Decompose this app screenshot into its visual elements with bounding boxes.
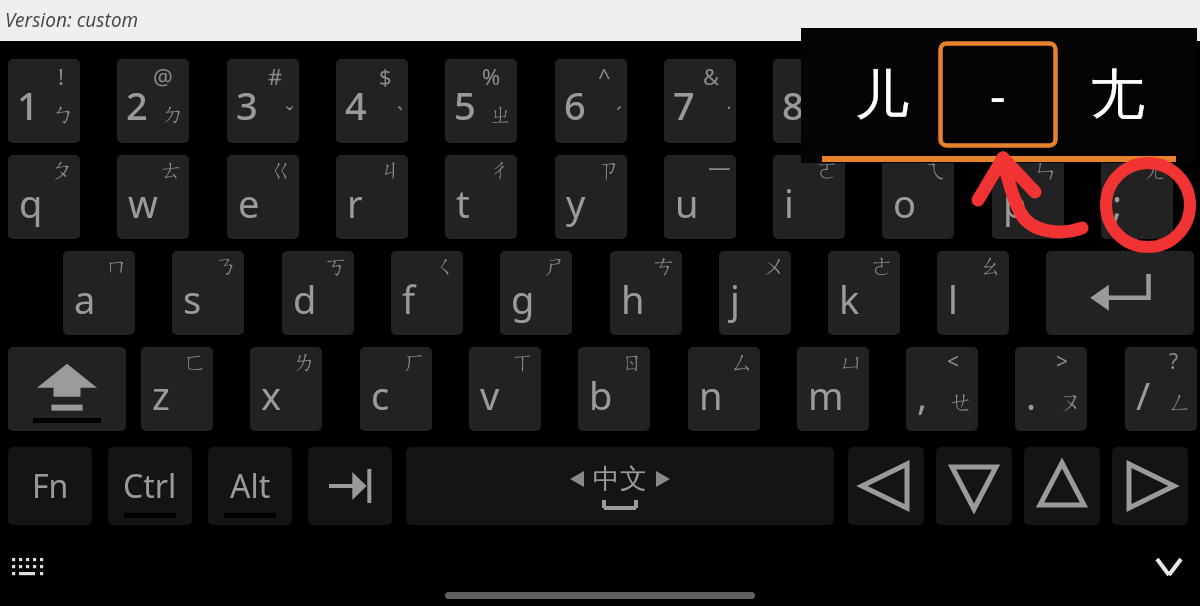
button[interactable]: Up (1024, 447, 1100, 525)
button[interactable]: 2 (117, 59, 189, 143)
button[interactable]: Left (848, 447, 924, 525)
staticText: g (511, 273, 535, 325)
button[interactable]: / (1125, 347, 1197, 431)
staticText: e (238, 177, 260, 229)
button[interactable]: u (664, 155, 736, 239)
button[interactable]: 7 (664, 59, 736, 143)
button[interactable]: w (117, 155, 189, 239)
staticText: 1 (17, 79, 39, 131)
staticText: ˊ (616, 99, 623, 129)
button[interactable]: j (719, 251, 791, 335)
button[interactable]: 儿 (827, 42, 937, 147)
button[interactable]: g (500, 251, 572, 335)
staticText: w (128, 177, 158, 229)
button[interactable]: 5 (445, 59, 517, 143)
staticText: ㄌ (293, 348, 317, 377)
button[interactable]: - (939, 42, 1057, 147)
button[interactable]: - (1101, 59, 1173, 143)
staticText: ! (58, 61, 64, 91)
button[interactable]: 0 (992, 59, 1064, 143)
button[interactable]: m (797, 347, 869, 431)
button[interactable]: . (1015, 347, 1087, 431)
button[interactable]: d (282, 251, 354, 335)
staticText: m (808, 369, 844, 421)
staticText: ㄅ (53, 101, 76, 129)
staticText: ㄏ (403, 348, 427, 377)
button[interactable]: ; (1101, 155, 1173, 239)
button[interactable]: Hide keyboard (1148, 552, 1190, 582)
button[interactable]: y (555, 155, 627, 239)
button[interactable]: 中文 (406, 447, 834, 525)
button[interactable]: Enter (1046, 251, 1194, 335)
button[interactable]: f (391, 251, 463, 335)
staticText: i (784, 177, 794, 229)
button[interactable]: x (250, 347, 322, 431)
button[interactable]: Right (1112, 447, 1188, 525)
button[interactable]: k (828, 251, 900, 335)
button[interactable]: p (992, 155, 1064, 239)
staticText: n (699, 369, 723, 421)
staticText: c (371, 369, 390, 421)
button[interactable]: 6 (555, 59, 627, 143)
staticText: ㄨ (762, 252, 786, 281)
staticText: < (947, 347, 960, 376)
staticText: 尢 (1091, 61, 1145, 129)
staticText: - (1110, 79, 1123, 131)
button[interactable]: e (227, 155, 299, 239)
staticText: ㄣ (1035, 156, 1059, 185)
staticText: u (675, 177, 699, 229)
staticText: ; (1112, 177, 1123, 229)
button[interactable]: o (882, 155, 954, 239)
button[interactable]: 1 (8, 59, 80, 143)
staticText: y (566, 177, 586, 229)
button[interactable]: 9 (882, 59, 954, 143)
button[interactable]: t (445, 155, 517, 239)
staticText: ㄋ (215, 252, 239, 281)
staticText: ㄊ (160, 156, 184, 185)
button[interactable]: s (172, 251, 244, 335)
button[interactable]: a (63, 251, 135, 335)
button[interactable]: Tab (308, 447, 392, 525)
staticText: ㄐ (379, 156, 403, 185)
staticText: 儿 (855, 61, 909, 129)
staticText: ㄉ (162, 101, 185, 129)
staticText: ㄆ (51, 156, 75, 185)
button[interactable]: Down (936, 447, 1012, 525)
button[interactable]: n (688, 347, 760, 431)
staticText: v (480, 369, 500, 421)
staticText: $ (379, 61, 392, 91)
button[interactable]: , (906, 347, 978, 431)
button[interactable]: v (469, 347, 541, 431)
button[interactable]: b (578, 347, 650, 431)
staticText: a (74, 273, 96, 325)
button[interactable]: Switch keyboard (10, 554, 44, 580)
staticText: / (1136, 369, 1151, 421)
staticText: ㄥ (1169, 388, 1193, 417)
staticText: b (589, 369, 613, 421)
button[interactable]: q (8, 155, 80, 239)
button[interactable]: 8 (773, 59, 845, 143)
staticText: Fn (32, 464, 69, 508)
button[interactable]: c (360, 347, 432, 431)
staticText: ㄎ (325, 252, 349, 281)
button[interactable]: h (610, 251, 682, 335)
button[interactable]: Ctrl (108, 447, 192, 525)
staticText: ㄒ (512, 348, 536, 377)
staticText: ㄝ (950, 388, 974, 417)
button[interactable]: Fn (8, 447, 92, 525)
button[interactable]: l (937, 251, 1009, 335)
staticText: q (19, 177, 43, 229)
button[interactable]: 尢 (1063, 42, 1173, 147)
staticText: ? (1169, 347, 1179, 376)
staticText: ㄜ (871, 252, 895, 281)
staticText: Version: custom (5, 7, 139, 33)
button[interactable]: 3 (227, 59, 299, 143)
button[interactable]: z (141, 347, 213, 431)
button[interactable]: Shift (8, 347, 126, 431)
button[interactable]: 4 (336, 59, 408, 143)
staticText: @ (153, 61, 173, 91)
button[interactable]: Alt (208, 447, 292, 525)
staticText: ˋ (397, 99, 404, 129)
button[interactable]: r (336, 155, 408, 239)
button[interactable]: i (773, 155, 845, 239)
